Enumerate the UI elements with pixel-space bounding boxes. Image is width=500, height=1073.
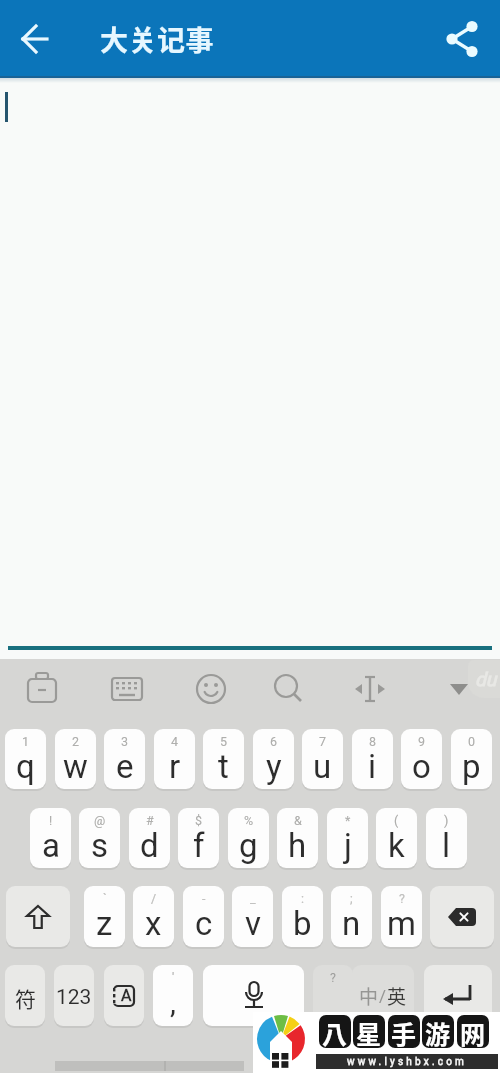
staticText: 2: [72, 734, 80, 749]
staticText: 9: [418, 734, 426, 749]
staticText: 游: [425, 1015, 451, 1048]
staticText: q: [16, 747, 35, 786]
staticText: 5: [220, 734, 228, 749]
button[interactable]: $: [178, 808, 219, 868]
staticText: 1: [22, 734, 30, 749]
staticText: 7: [319, 734, 327, 749]
staticText: z: [96, 904, 113, 943]
button[interactable]: ?: [381, 886, 422, 947]
button[interactable]: !: [30, 808, 71, 868]
button[interactable]: 7: [302, 729, 343, 789]
staticText: 八: [322, 1015, 348, 1048]
button[interactable]: @: [79, 808, 120, 868]
staticText: k: [388, 826, 405, 865]
staticText: v: [245, 904, 261, 943]
staticText: u: [313, 747, 332, 786]
button[interactable]: ): [426, 808, 467, 868]
staticText: n: [342, 904, 361, 943]
button[interactable]: #: [129, 808, 170, 868]
staticText: `: [103, 891, 107, 906]
staticText: @: [94, 813, 106, 828]
staticText: t: [218, 747, 229, 786]
staticText: x: [145, 904, 162, 943]
button[interactable]: [14, 17, 58, 61]
staticText: 0: [468, 734, 476, 749]
staticText: l: [442, 826, 451, 865]
staticText: c: [195, 904, 213, 943]
staticText: A: [121, 986, 132, 1005]
staticText: f: [193, 826, 205, 865]
staticText: &: [294, 813, 302, 828]
button[interactable]: &: [277, 808, 318, 868]
button[interactable]: ?: [313, 965, 353, 1026]
staticText: 123: [56, 985, 92, 1010]
button[interactable]: [424, 965, 492, 1026]
staticText: du: [475, 668, 497, 690]
button[interactable]: [203, 965, 304, 1026]
staticText: (: [394, 813, 399, 828]
button[interactable]: A: [104, 965, 144, 1026]
staticText: e: [116, 747, 134, 786]
staticText: o: [412, 747, 431, 786]
staticText: www.lyshbx.com: [347, 1056, 468, 1068]
staticText: /: [151, 891, 157, 906]
staticText: m: [387, 904, 416, 943]
button[interactable]: 1: [5, 729, 46, 789]
button[interactable]: _: [232, 886, 273, 947]
staticText: a: [42, 826, 60, 865]
staticText: i: [368, 747, 377, 786]
staticText: 中: [359, 982, 379, 1010]
staticText: ): [444, 813, 449, 828]
staticText: *: [345, 813, 351, 828]
button[interactable]: %: [228, 808, 269, 868]
staticText: r: [169, 747, 181, 786]
button[interactable]: 2: [55, 729, 96, 789]
staticText: 手: [391, 1015, 417, 1048]
staticText: j: [344, 826, 352, 865]
button[interactable]: :: [282, 886, 323, 947]
staticText: 6: [270, 734, 278, 749]
staticText: d: [140, 826, 159, 865]
staticText: 大关记事: [100, 19, 215, 60]
staticText: s: [91, 826, 109, 865]
staticText: _: [250, 891, 256, 906]
button[interactable]: -: [183, 886, 224, 947]
staticText: /: [379, 986, 387, 1006]
button[interactable]: [440, 17, 484, 61]
staticText: 4: [171, 734, 179, 749]
button[interactable]: *: [327, 808, 368, 868]
button[interactable]: 符: [5, 965, 45, 1026]
staticText: h: [288, 826, 307, 865]
button[interactable]: ;: [331, 886, 372, 947]
staticText: 8: [369, 734, 377, 749]
button[interactable]: 6: [253, 729, 294, 789]
button[interactable]: 4: [154, 729, 195, 789]
staticText: 3: [121, 734, 129, 749]
staticText: w: [63, 747, 88, 786]
button[interactable]: [6, 886, 70, 947]
button[interactable]: ': [153, 965, 193, 1026]
button[interactable]: /: [133, 886, 174, 947]
staticText: $: [195, 813, 203, 828]
staticText: #: [146, 813, 154, 828]
button[interactable]: [430, 886, 494, 947]
button[interactable]: 8: [352, 729, 393, 789]
staticText: ,: [170, 985, 176, 1020]
staticText: ?: [330, 970, 336, 985]
staticText: b: [293, 904, 312, 943]
button[interactable]: `: [84, 886, 125, 947]
button[interactable]: 123: [54, 965, 94, 1026]
staticText: -: [202, 891, 206, 906]
button[interactable]: 0: [451, 729, 492, 789]
button[interactable]: (: [376, 808, 417, 868]
staticText: y: [266, 747, 282, 786]
staticText: 网: [460, 1015, 486, 1048]
staticText: ;: [350, 891, 353, 906]
button[interactable]: 中: [352, 965, 414, 1026]
button[interactable]: 9: [401, 729, 442, 789]
staticText: ?: [399, 891, 405, 906]
staticText: 符: [15, 983, 36, 1013]
button[interactable]: 3: [104, 729, 145, 789]
staticText: !: [49, 813, 53, 828]
button[interactable]: 5: [203, 729, 244, 789]
